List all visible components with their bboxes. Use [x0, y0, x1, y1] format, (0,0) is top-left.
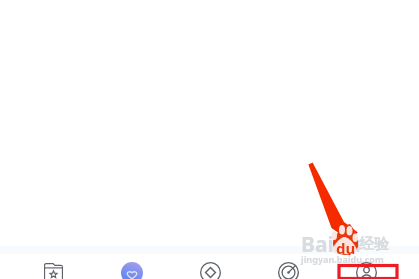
- button[interactable]: Favourites: [14, 245, 93, 279]
- button[interactable]: Profile: [327, 245, 405, 279]
- staticText: jingyan.baidu.com: [301, 253, 384, 265]
- staticText: Baidu: [301, 230, 361, 259]
- button[interactable]: Discover: [171, 245, 249, 279]
- button[interactable]: Likes: [93, 245, 171, 279]
- staticText: du: [336, 238, 356, 258]
- staticText: 经验: [359, 235, 389, 254]
- button[interactable]: Explore: [249, 245, 327, 279]
